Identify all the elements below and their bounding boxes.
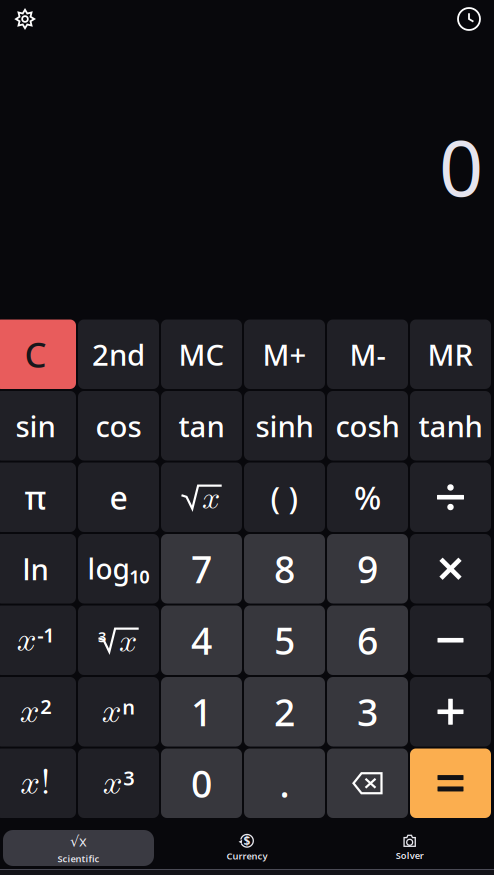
button[interactable]: Settings	[6, 2, 44, 36]
button[interactable]: x factorial	[0, 748, 76, 818]
button[interactable]: √x	[3, 830, 166, 866]
button[interactable]: ln	[0, 534, 76, 603]
button[interactable]: e	[78, 462, 159, 532]
button[interactable]: Subtract	[410, 605, 491, 675]
button[interactable]: Equals	[410, 748, 491, 818]
staticText: e	[109, 476, 127, 518]
staticText: 𝑥	[20, 766, 40, 801]
staticText: sinh	[255, 406, 313, 445]
staticText: tanh	[418, 406, 482, 445]
button[interactable]: x to the power of minus one	[0, 605, 76, 675]
button[interactable]: log₁₀	[78, 534, 159, 603]
staticText: π	[24, 476, 46, 518]
button[interactable]: ( )	[244, 462, 325, 532]
button[interactable]: Delete	[327, 748, 408, 818]
button[interactable]: 6	[327, 605, 408, 675]
staticText: n	[122, 693, 135, 720]
staticText: 2nd	[92, 335, 145, 374]
staticText: 6	[357, 615, 378, 665]
staticText: MR	[427, 335, 473, 374]
button[interactable]: Multiply	[410, 534, 491, 603]
staticText: M-	[349, 335, 385, 374]
staticText: tan	[178, 406, 224, 445]
staticText: Solver	[396, 849, 424, 862]
button[interactable]: 2nd	[78, 319, 159, 389]
button[interactable]: Square root of x	[161, 462, 242, 532]
button[interactable]: tan	[161, 391, 242, 460]
button[interactable]: sinh	[244, 391, 325, 460]
staticText: %	[354, 476, 381, 518]
staticText: 3	[98, 627, 106, 646]
staticText: 9	[357, 544, 378, 594]
staticText: 𝑥	[119, 626, 137, 658]
staticText: 𝑥	[17, 623, 37, 658]
staticText: !	[41, 766, 51, 801]
button[interactable]: M+	[244, 319, 325, 389]
staticText: M+	[262, 335, 306, 374]
staticText: √x	[70, 831, 87, 851]
button[interactable]: 5	[244, 605, 325, 675]
button[interactable]: %	[327, 462, 408, 532]
button[interactable]: $	[166, 830, 328, 866]
staticText: 4	[191, 615, 212, 665]
button[interactable]: Cube root of x	[78, 605, 159, 675]
button[interactable]: M-	[327, 319, 408, 389]
staticText: log₁₀	[87, 550, 149, 587]
button[interactable]: Divide	[410, 462, 491, 532]
staticText: 2	[274, 687, 295, 737]
button[interactable]: C	[0, 319, 76, 389]
button[interactable]: cosh	[327, 391, 408, 460]
staticText: cos	[95, 406, 141, 445]
staticText: sin	[15, 406, 55, 445]
staticText: -1	[37, 621, 54, 648]
staticText: 7	[191, 544, 212, 594]
button[interactable]: 8	[244, 534, 325, 603]
button[interactable]: cos	[78, 391, 159, 460]
staticText: 𝑥	[202, 483, 220, 515]
staticText: ( )	[270, 477, 298, 518]
button[interactable]: π	[0, 462, 76, 532]
staticText: 1	[191, 687, 212, 737]
button[interactable]: History	[450, 2, 488, 36]
button[interactable]: x cubed	[78, 748, 159, 818]
button[interactable]: 2	[244, 677, 325, 746]
staticText: 𝑥	[102, 694, 122, 729]
staticText: C	[24, 331, 46, 377]
button[interactable]: 0	[161, 748, 242, 818]
staticText: Scientific	[57, 852, 99, 865]
staticText: cosh	[335, 406, 399, 445]
staticText: 5	[274, 615, 295, 665]
button[interactable]: x to the power of n	[78, 677, 159, 746]
button[interactable]: 7	[161, 534, 242, 603]
staticText: Currency	[226, 850, 267, 862]
staticText: 2	[40, 693, 51, 720]
button[interactable]: 9	[327, 534, 408, 603]
button[interactable]: 1	[161, 677, 242, 746]
staticText: MC	[178, 335, 224, 374]
button[interactable]: sin	[0, 391, 76, 460]
staticText: 𝑥	[103, 766, 123, 801]
staticText: .	[279, 758, 289, 808]
button[interactable]: Add	[410, 677, 491, 746]
staticText: 0	[439, 115, 483, 218]
staticText: 3	[357, 687, 378, 737]
staticText: ln	[22, 549, 48, 588]
button[interactable]: 3	[327, 677, 408, 746]
button[interactable]: 4	[161, 605, 242, 675]
button[interactable]: x squared	[0, 677, 76, 746]
button[interactable]: MR	[410, 319, 491, 389]
button[interactable]: .	[244, 748, 325, 818]
staticText: 𝑥	[20, 694, 40, 729]
button[interactable]: tanh	[410, 391, 491, 460]
button[interactable]: Solver	[328, 830, 491, 866]
staticText: $	[243, 833, 250, 849]
staticText: 3	[123, 764, 134, 791]
staticText: 8	[274, 544, 295, 594]
button[interactable]: MC	[161, 319, 242, 389]
staticText: 0	[191, 758, 212, 808]
